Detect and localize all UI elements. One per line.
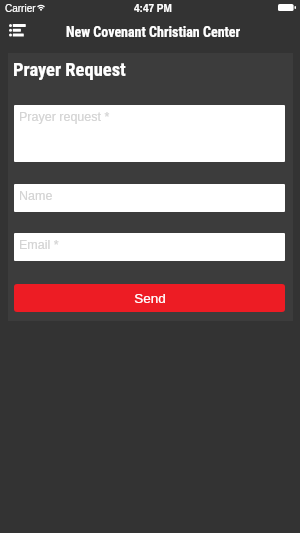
button[interactable]: Menu — [0, 20, 34, 50]
staticText: Send — [134, 291, 166, 306]
staticText: Email * — [19, 238, 59, 252]
staticText: Name — [19, 189, 53, 203]
staticText: Prayer request * — [19, 110, 110, 124]
button[interactable]: Prayer request * — [14, 105, 285, 162]
button[interactable]: Name — [14, 184, 285, 212]
staticText: New Covenant Christian Center — [66, 24, 241, 40]
staticText: Prayer Request — [13, 59, 126, 81]
button[interactable]: Send — [14, 284, 285, 312]
button[interactable]: Email * — [14, 233, 285, 261]
staticText: Carrier — [5, 3, 36, 14]
staticText: 4:47 PM — [134, 3, 172, 14]
